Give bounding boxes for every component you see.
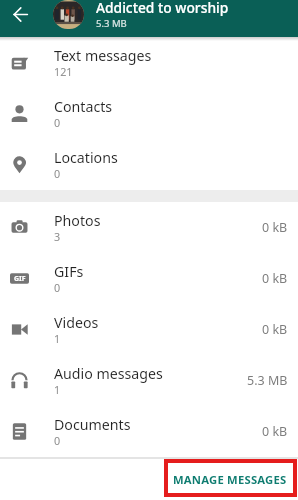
staticText: GIFs xyxy=(54,262,84,281)
staticText: MANAGE MESSAGES xyxy=(173,472,287,487)
staticText: Locations xyxy=(54,148,118,167)
staticText: 0 xyxy=(54,115,61,130)
button[interactable]: Text messages xyxy=(0,37,298,88)
staticText: GIF xyxy=(14,274,26,284)
button[interactable]: Contacts xyxy=(0,88,298,139)
staticText: 0 xyxy=(54,280,61,295)
staticText: 5.3 MB xyxy=(247,372,288,389)
button[interactable]: Videos xyxy=(0,304,298,355)
button[interactable]: Photos xyxy=(0,202,298,253)
staticText: 0 kB xyxy=(262,321,288,338)
button[interactable]: Group photo xyxy=(53,0,84,29)
button[interactable]: Audio messages xyxy=(0,355,298,406)
staticText: 0 kB xyxy=(262,219,288,236)
button[interactable]: MANAGE MESSAGES xyxy=(162,462,298,497)
staticText: 1 xyxy=(54,382,61,397)
staticText: Audio messages xyxy=(54,364,163,383)
staticText: 0 kB xyxy=(262,270,288,287)
button[interactable]: GIF xyxy=(0,253,298,304)
staticText: 0 xyxy=(54,166,61,181)
button[interactable]: Documents xyxy=(0,406,298,457)
staticText: Text messages xyxy=(54,46,152,65)
staticText: Photos xyxy=(54,211,101,230)
staticText: Documents xyxy=(54,415,131,434)
staticText: Videos xyxy=(54,313,99,332)
staticText: 5.3 MB xyxy=(96,17,127,27)
staticText: 0 xyxy=(54,433,61,448)
staticText: Addicted to worship xyxy=(96,0,229,17)
button[interactable]: Locations xyxy=(0,139,298,190)
staticText: 0 kB xyxy=(262,423,288,440)
staticText: 3 xyxy=(54,229,61,244)
staticText: Contacts xyxy=(54,97,113,116)
staticText: 1 xyxy=(54,331,61,346)
staticText: 121 xyxy=(54,64,73,79)
button[interactable]: Back xyxy=(0,0,40,29)
